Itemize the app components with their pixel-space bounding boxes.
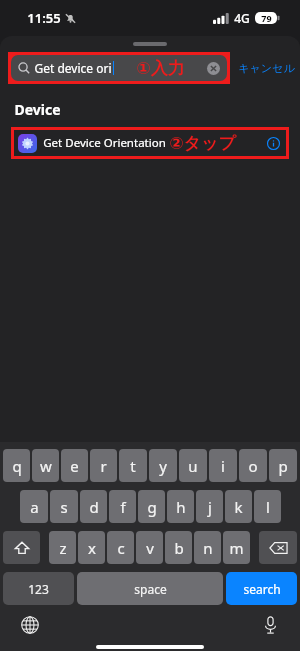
staticText: g — [147, 497, 157, 517]
staticText: b — [174, 538, 184, 558]
staticText: n — [203, 538, 213, 558]
staticText: h — [176, 497, 186, 517]
button[interactable]: Voice input — [258, 613, 282, 637]
button[interactable]: j — [196, 490, 223, 523]
staticText: 4G — [234, 10, 250, 26]
button[interactable]: y — [149, 449, 177, 482]
staticText: ②タップ — [169, 133, 236, 154]
staticText: o — [248, 456, 258, 476]
button[interactable]: m — [223, 531, 250, 564]
button[interactable]: k — [225, 490, 252, 523]
staticText: m — [229, 538, 244, 558]
button[interactable]: z — [49, 531, 76, 564]
button[interactable]: s — [50, 490, 78, 523]
button[interactable]: Change keyboard language — [18, 613, 42, 637]
staticText: Get device ori — [34, 60, 112, 76]
button[interactable]: Get Device Orientation — [14, 130, 286, 156]
button[interactable]: d — [80, 490, 107, 523]
staticText: z — [59, 538, 67, 558]
button[interactable]: p — [269, 449, 297, 482]
button[interactable]: g — [138, 490, 165, 523]
button[interactable]: h — [167, 490, 194, 523]
button[interactable]: Backspace — [259, 531, 297, 564]
button[interactable]: キャンセル — [236, 57, 297, 79]
staticText: k — [234, 497, 243, 517]
button[interactable]: b — [165, 531, 192, 564]
staticText: space — [134, 581, 167, 597]
staticText: p — [278, 456, 288, 476]
staticText: Get Device Orientation — [43, 135, 166, 151]
button[interactable]: v — [136, 531, 163, 564]
button[interactable]: a — [20, 490, 48, 523]
button[interactable]: q — [3, 449, 30, 482]
button[interactable]: Get device ori — [11, 55, 227, 81]
button[interactable]: o — [239, 449, 267, 482]
staticText: Device — [14, 100, 61, 119]
staticText: w — [40, 456, 52, 476]
button[interactable]: space — [77, 572, 223, 605]
staticText: s — [60, 497, 68, 517]
staticText: d — [89, 497, 99, 517]
staticText: y — [159, 456, 167, 476]
button[interactable]: f — [109, 490, 136, 523]
button[interactable]: l — [254, 490, 281, 523]
staticText: l — [266, 497, 270, 517]
button[interactable]: e — [61, 449, 88, 482]
staticText: 79 — [261, 12, 272, 24]
staticText: u — [188, 456, 198, 476]
button[interactable]: i — [209, 449, 237, 482]
staticText: 11:55 — [27, 9, 61, 27]
staticText: 123 — [28, 581, 49, 597]
staticText: j — [208, 497, 212, 517]
staticText: q — [12, 456, 22, 476]
staticText: ①入力 — [136, 58, 185, 79]
button[interactable]: search — [226, 572, 297, 605]
button[interactable]: w — [32, 449, 59, 482]
staticText: x — [88, 538, 96, 558]
staticText: キャンセル — [238, 61, 295, 75]
staticText: a — [30, 497, 39, 517]
button[interactable]: Shift — [3, 531, 40, 564]
button[interactable]: n — [194, 531, 221, 564]
staticText: c — [117, 538, 125, 558]
button[interactable]: t — [119, 449, 147, 482]
button[interactable]: 123 — [3, 572, 74, 605]
staticText: r — [100, 456, 107, 476]
button[interactable]: x — [78, 531, 105, 564]
staticText: t — [130, 456, 136, 476]
button[interactable]: Information — [267, 137, 280, 150]
staticText: e — [70, 456, 79, 476]
staticText: v — [146, 538, 154, 558]
staticText: search — [243, 581, 281, 597]
button[interactable]: u — [179, 449, 207, 482]
button[interactable]: Clear text — [207, 62, 220, 75]
button[interactable]: r — [90, 449, 117, 482]
staticText: i — [221, 456, 225, 476]
staticText: f — [120, 497, 126, 517]
button[interactable]: c — [107, 531, 134, 564]
